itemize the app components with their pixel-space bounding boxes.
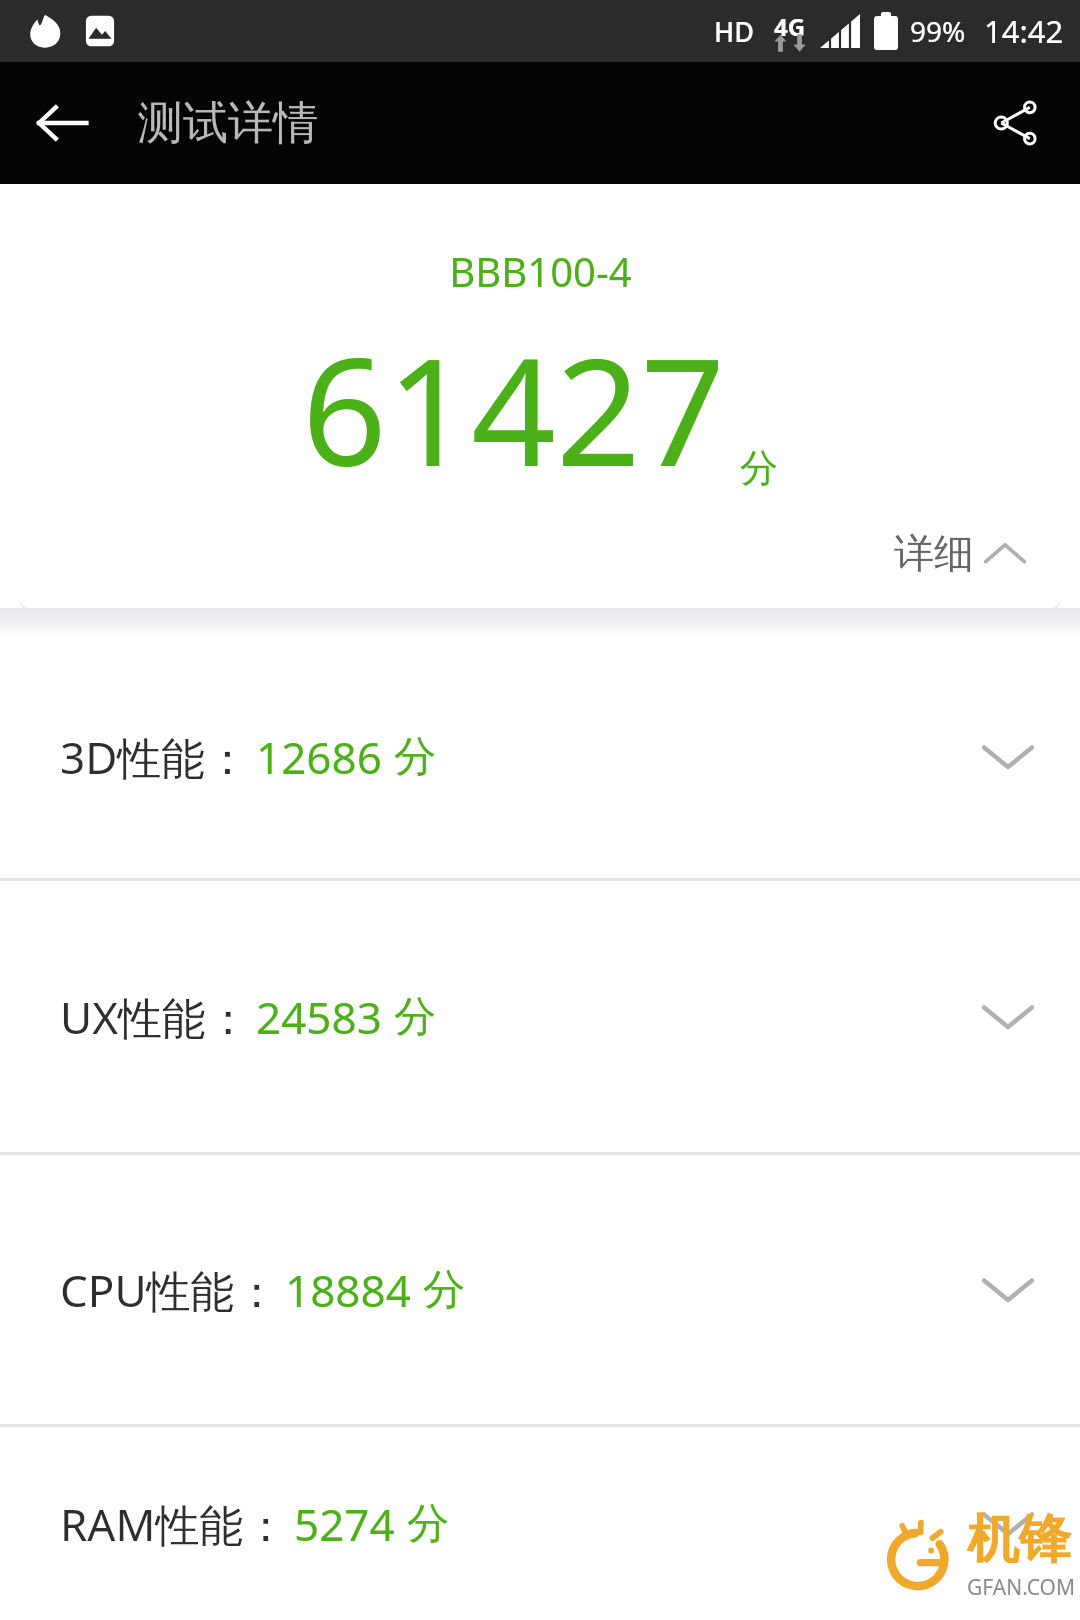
staticText: 24583 <box>256 987 382 1047</box>
staticText: 61427 <box>302 308 726 510</box>
staticText: 18884 <box>285 1260 411 1320</box>
staticText: 分 <box>394 991 436 1044</box>
button[interactable]: RAM性能： <box>0 1427 1080 1620</box>
staticText: 12686 <box>256 727 382 787</box>
staticText: BBB100-4 <box>449 244 632 298</box>
staticText: 14:42 <box>984 10 1064 52</box>
staticText: 分 <box>740 444 778 492</box>
button[interactable]: 详细 <box>894 528 1026 578</box>
staticText: 机锋 <box>967 1507 1071 1573</box>
staticText: RAM性能： <box>60 1494 288 1554</box>
button[interactable]: BBB100-4 <box>20 202 1060 608</box>
staticText: GFAN.COM <box>967 1573 1076 1602</box>
staticText: 测试详情 <box>138 95 318 152</box>
button[interactable]: Share <box>978 85 1054 161</box>
staticText: 3D性能： <box>60 727 250 787</box>
button[interactable]: 3D性能： <box>0 636 1080 878</box>
staticText: 分 <box>394 731 436 784</box>
staticText: 5274 <box>294 1494 395 1554</box>
button[interactable]: Back <box>24 85 100 161</box>
button[interactable]: CPU性能： <box>0 1155 1080 1424</box>
staticText: UX性能： <box>60 987 250 1047</box>
staticText: HD <box>714 13 754 50</box>
staticText: 详细 <box>894 528 974 578</box>
staticText: CPU性能： <box>60 1260 279 1320</box>
staticText: 分 <box>407 1498 449 1551</box>
staticText: 4G <box>774 10 806 43</box>
button[interactable]: UX性能： <box>0 881 1080 1152</box>
staticText: 99% <box>910 12 966 50</box>
staticText: 分 <box>423 1264 465 1317</box>
